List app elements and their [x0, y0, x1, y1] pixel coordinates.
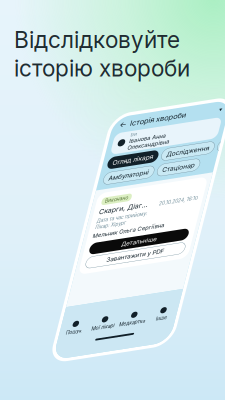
staticText: історію хвороби — [14, 54, 190, 82]
staticText: Іванова Анна — [75, 82, 187, 103]
button[interactable]: Амбулаторні — [25, 183, 178, 221]
button[interactable]: Дослідження — [189, 135, 225, 173]
staticText: Амбулаторні — [40, 190, 163, 215]
button[interactable]: Стаціонар — [188, 183, 225, 221]
staticText: Стаціонар — [203, 190, 225, 215]
staticText: Ви — [75, 65, 94, 82]
staticText: Відслідковуйте — [14, 26, 180, 53]
staticText: Дата та час прийому: — [37, 326, 191, 344]
staticText: Лікар: Хірург — [37, 346, 131, 363]
staticText: Олександрівна — [75, 103, 203, 124]
staticText: Історія хвороби — [64, 22, 225, 50]
staticText: ← — [32, 22, 54, 50]
staticText: Скарги, Діагноз — [37, 293, 196, 319]
button[interactable]: Огляд лікаря — [25, 135, 179, 173]
staticText: Огляд лікаря — [40, 142, 164, 167]
staticText: Виконано — [47, 265, 118, 283]
staticText: Дослідження — [204, 142, 225, 167]
